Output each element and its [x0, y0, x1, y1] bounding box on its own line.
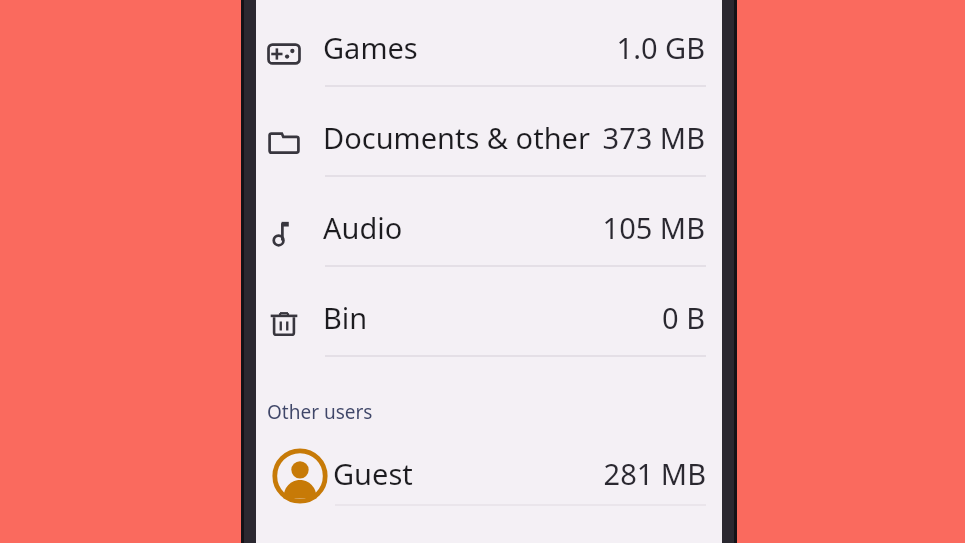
button[interactable]: Bin [256, 270, 722, 360]
staticText: Bin [323, 298, 368, 337]
staticText: 281 MB [516, 454, 706, 493]
staticText: Other users [267, 399, 373, 425]
other: Games [266, 36, 302, 72]
other: Documents and other [266, 126, 302, 162]
staticText: 0 B [506, 298, 705, 337]
button[interactable]: Guest account [256, 436, 722, 526]
button[interactable]: Audio [256, 180, 722, 270]
staticText: 1.0 GB [506, 28, 705, 67]
other: Audio [266, 216, 302, 252]
other: Guest account [272, 448, 328, 504]
staticText: Guest [333, 454, 413, 493]
staticText: 373 MB [506, 118, 705, 157]
staticText: Games [323, 28, 418, 67]
staticText: Audio [323, 208, 403, 247]
other: Bin [266, 306, 302, 342]
button[interactable]: Games [256, 0, 722, 90]
staticText: Documents & other [323, 118, 590, 157]
staticText: 105 MB [506, 208, 705, 247]
button[interactable]: Documents and other [256, 90, 722, 180]
